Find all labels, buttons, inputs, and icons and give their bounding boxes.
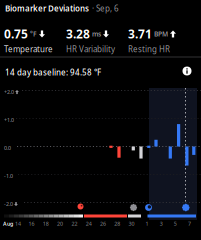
staticText: Aug <box>3 220 13 227</box>
staticText: 0.75 <box>4 26 28 42</box>
staticText: °F <box>30 29 37 38</box>
staticText: 14 day baseline: 94.58 °F <box>5 67 101 78</box>
staticText: Resting HR <box>128 44 170 54</box>
staticText: 3 <box>160 220 163 227</box>
staticText: 7 <box>188 220 191 227</box>
staticText: 16 <box>28 220 34 227</box>
staticText: 0.0 <box>4 144 11 152</box>
staticText: HR Variability <box>66 44 115 54</box>
staticText: 3.71 <box>128 26 152 42</box>
staticText: ms <box>92 29 101 38</box>
button[interactable]: Event <box>130 204 137 211</box>
staticText: 26 <box>100 220 106 227</box>
staticText: Temperature <box>4 44 53 54</box>
staticText: 5 <box>174 220 177 227</box>
staticText: 18 <box>43 220 49 227</box>
staticText: 24 <box>86 220 92 227</box>
staticText: 22 <box>71 220 77 227</box>
button[interactable]: 3.28 <box>66 26 115 55</box>
staticText: 20 <box>57 220 63 227</box>
staticText: 28 <box>114 220 120 227</box>
staticText: 14 <box>15 220 21 227</box>
staticText: +1.0 <box>4 116 14 124</box>
staticText: +2.0 <box>4 88 14 96</box>
staticText: Biomarker Deviations <box>5 3 89 14</box>
staticText: 30 <box>129 220 135 227</box>
button[interactable]: Sleep event <box>145 204 152 211</box>
staticText: 1 <box>145 220 148 227</box>
staticText: -1.0 <box>4 172 13 180</box>
staticText: BPM <box>154 29 168 38</box>
button[interactable]: Info <box>182 66 191 75</box>
button[interactable]: Settings event <box>182 204 189 211</box>
staticText: · Sep, 6 <box>92 3 119 14</box>
button[interactable]: 3.71 <box>128 26 176 55</box>
staticText: 3.28 <box>66 26 90 42</box>
staticText: -2.0 <box>4 200 13 208</box>
button[interactable]: Illness event <box>77 203 83 209</box>
button[interactable]: 0.75 <box>4 26 53 55</box>
